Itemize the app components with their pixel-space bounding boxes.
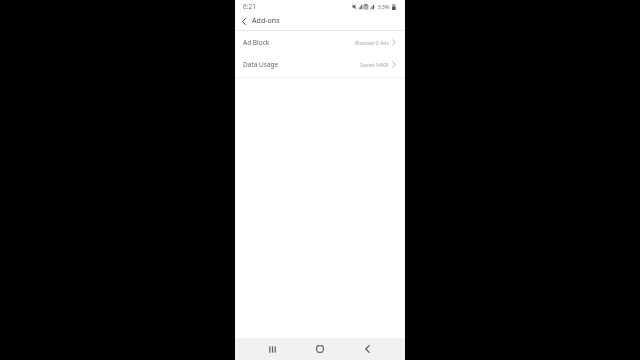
button[interactable] <box>362 338 372 360</box>
button[interactable] <box>266 338 279 360</box>
staticText: Saved 54KB <box>360 61 389 68</box>
button[interactable] <box>313 338 327 360</box>
staticText: Ad Block <box>243 38 270 47</box>
staticText: Blocked 0 Ads <box>355 39 389 46</box>
button[interactable]: Add-ons <box>235 12 405 30</box>
button[interactable]: Ad Block <box>235 31 405 53</box>
staticText: 6:21 <box>243 2 256 11</box>
staticText: 53% <box>378 3 390 11</box>
button[interactable]: Data Usage <box>235 53 405 75</box>
staticText: Add-ons <box>252 16 280 26</box>
staticText: Data Usage <box>243 60 279 69</box>
